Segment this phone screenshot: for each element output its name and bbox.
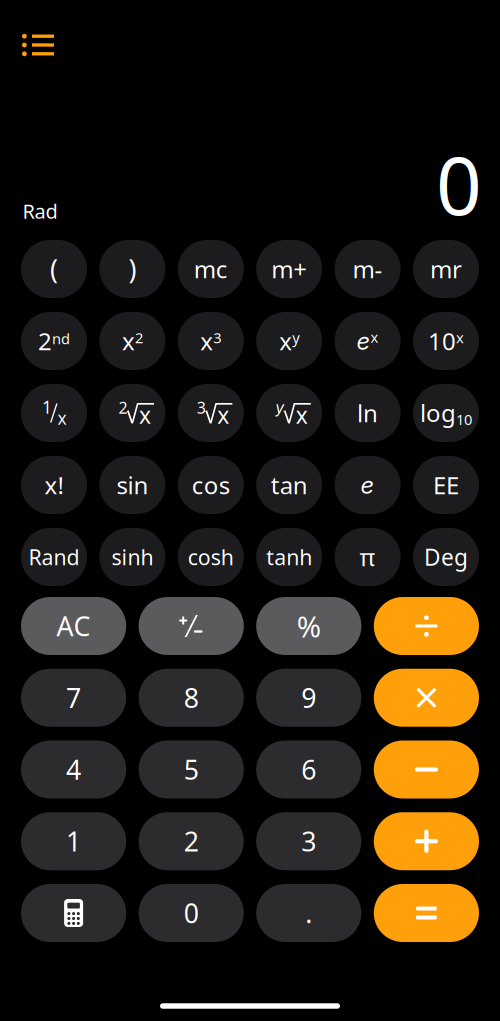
staticText: ( (50, 251, 58, 287)
staticText: 7 (66, 680, 81, 715)
button[interactable]: sin (99, 456, 165, 514)
staticText: 2nd (38, 325, 70, 357)
button[interactable]: 1 (21, 384, 87, 442)
staticText: AC (57, 608, 91, 644)
button[interactable]: log10 (413, 384, 479, 442)
button[interactable]: 8 (139, 669, 244, 727)
button[interactable]: 5 (139, 740, 244, 798)
staticText: 2 (184, 823, 199, 859)
staticText: x3 (200, 325, 221, 357)
button[interactable]: 2nd (21, 312, 87, 370)
staticText: mc (194, 253, 228, 285)
staticText: 5 (184, 752, 199, 787)
button[interactable]: ) (99, 240, 165, 298)
staticText: 10x (428, 325, 464, 357)
staticText: ) (128, 251, 136, 287)
staticText: 0 (436, 131, 482, 237)
staticText: 9 (301, 680, 316, 715)
staticText: cos (192, 469, 230, 501)
staticText: x (139, 400, 151, 430)
button[interactable]: cosh (178, 528, 244, 586)
button[interactable]: ex (335, 312, 401, 370)
staticText: m+ (271, 253, 307, 285)
button[interactable]: cos (178, 456, 244, 514)
button[interactable]: 9 (256, 669, 361, 727)
button[interactable]: m+ (256, 240, 322, 298)
staticText: 2 (118, 397, 127, 418)
button[interactable]: mc (178, 240, 244, 298)
button[interactable]: tan (256, 456, 322, 514)
button[interactable]: 2 (139, 812, 244, 870)
staticText: xy (279, 325, 299, 357)
button[interactable]: m- (335, 240, 401, 298)
button[interactable]: 1 (21, 812, 126, 870)
button[interactable]: tanh (256, 528, 322, 586)
button[interactable]: Divide (374, 597, 479, 655)
button[interactable]: 10x (413, 312, 479, 370)
staticText: 0 (184, 895, 199, 931)
staticText: Deg (424, 542, 468, 572)
button[interactable]: AC (21, 597, 126, 655)
button[interactable]: e (335, 456, 401, 514)
button[interactable]: 2 (99, 384, 165, 442)
staticText: 6 (301, 752, 316, 787)
button[interactable]: 0 (139, 884, 244, 942)
staticText: 1 (66, 823, 81, 859)
staticText: m- (353, 253, 383, 285)
staticText: 3 (197, 397, 206, 418)
button[interactable]: Subtract (374, 740, 479, 798)
button[interactable]: . (256, 884, 361, 942)
button[interactable]: 6 (256, 740, 361, 798)
button[interactable]: xy (256, 312, 322, 370)
button[interactable]: y (256, 384, 322, 442)
button[interactable]: ln (335, 384, 401, 442)
staticText: tanh (266, 543, 312, 571)
button[interactable]: Add (374, 812, 479, 870)
button[interactable]: x3 (178, 312, 244, 370)
staticText: ex (357, 327, 379, 355)
staticText: π (360, 541, 376, 573)
staticText: sin (116, 469, 148, 501)
staticText: 1 (42, 395, 52, 418)
button[interactable]: % (256, 597, 361, 655)
staticText: e (361, 470, 375, 499)
staticText: x (57, 406, 66, 429)
staticText: ln (357, 397, 378, 429)
staticText: Rand (28, 543, 79, 571)
button[interactable]: π (335, 528, 401, 586)
staticText: 4 (66, 752, 81, 787)
button[interactable]: 4 (21, 740, 126, 798)
button[interactable]: 7 (21, 669, 126, 727)
staticText: mr (430, 253, 462, 285)
button[interactable]: Equals (374, 884, 479, 942)
button[interactable]: x2 (99, 312, 165, 370)
staticText: EE (433, 469, 459, 501)
staticText: x (296, 400, 308, 430)
button[interactable]: x! (21, 456, 87, 514)
staticText: log10 (420, 397, 472, 429)
staticText: x2 (122, 325, 143, 357)
staticText: 8 (184, 680, 199, 715)
button[interactable]: ( (21, 240, 87, 298)
button[interactable]: Deg (413, 528, 479, 586)
staticText: y (275, 398, 284, 417)
button[interactable]: Multiply (374, 669, 479, 727)
staticText: tan (271, 469, 308, 501)
staticText: . (305, 895, 312, 931)
button[interactable]: Toggle sign (139, 597, 244, 655)
button[interactable]: 3 (178, 384, 244, 442)
button[interactable]: Rand (21, 528, 87, 586)
button[interactable]: sinh (99, 528, 165, 586)
button[interactable]: Basic calculator (21, 884, 126, 942)
staticText: % (297, 606, 321, 645)
staticText: Rad (22, 198, 57, 224)
button[interactable]: 3 (256, 812, 361, 870)
staticText: 3 (301, 823, 316, 859)
button[interactable]: mr (413, 240, 479, 298)
staticText: cosh (188, 543, 234, 571)
button[interactable]: EE (413, 456, 479, 514)
staticText: sinh (111, 543, 153, 571)
staticText: x (217, 400, 229, 430)
button[interactable]: Calculator history (11, 23, 65, 67)
staticText: x! (44, 469, 63, 501)
